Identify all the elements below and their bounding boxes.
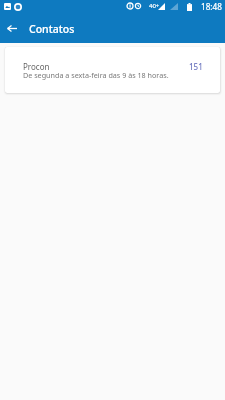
staticText: De segunda a sexta-feira das 9 às 18 hor… [23, 70, 169, 80]
staticText: 151 [189, 61, 203, 72]
staticText: Procon [23, 61, 50, 72]
button[interactable]: Back [0, 14, 24, 43]
button[interactable]: Procon [5, 47, 220, 93]
staticText: 40+ [149, 2, 160, 10]
staticText: Contatos [29, 22, 75, 36]
staticText: 18:48 [201, 1, 222, 12]
